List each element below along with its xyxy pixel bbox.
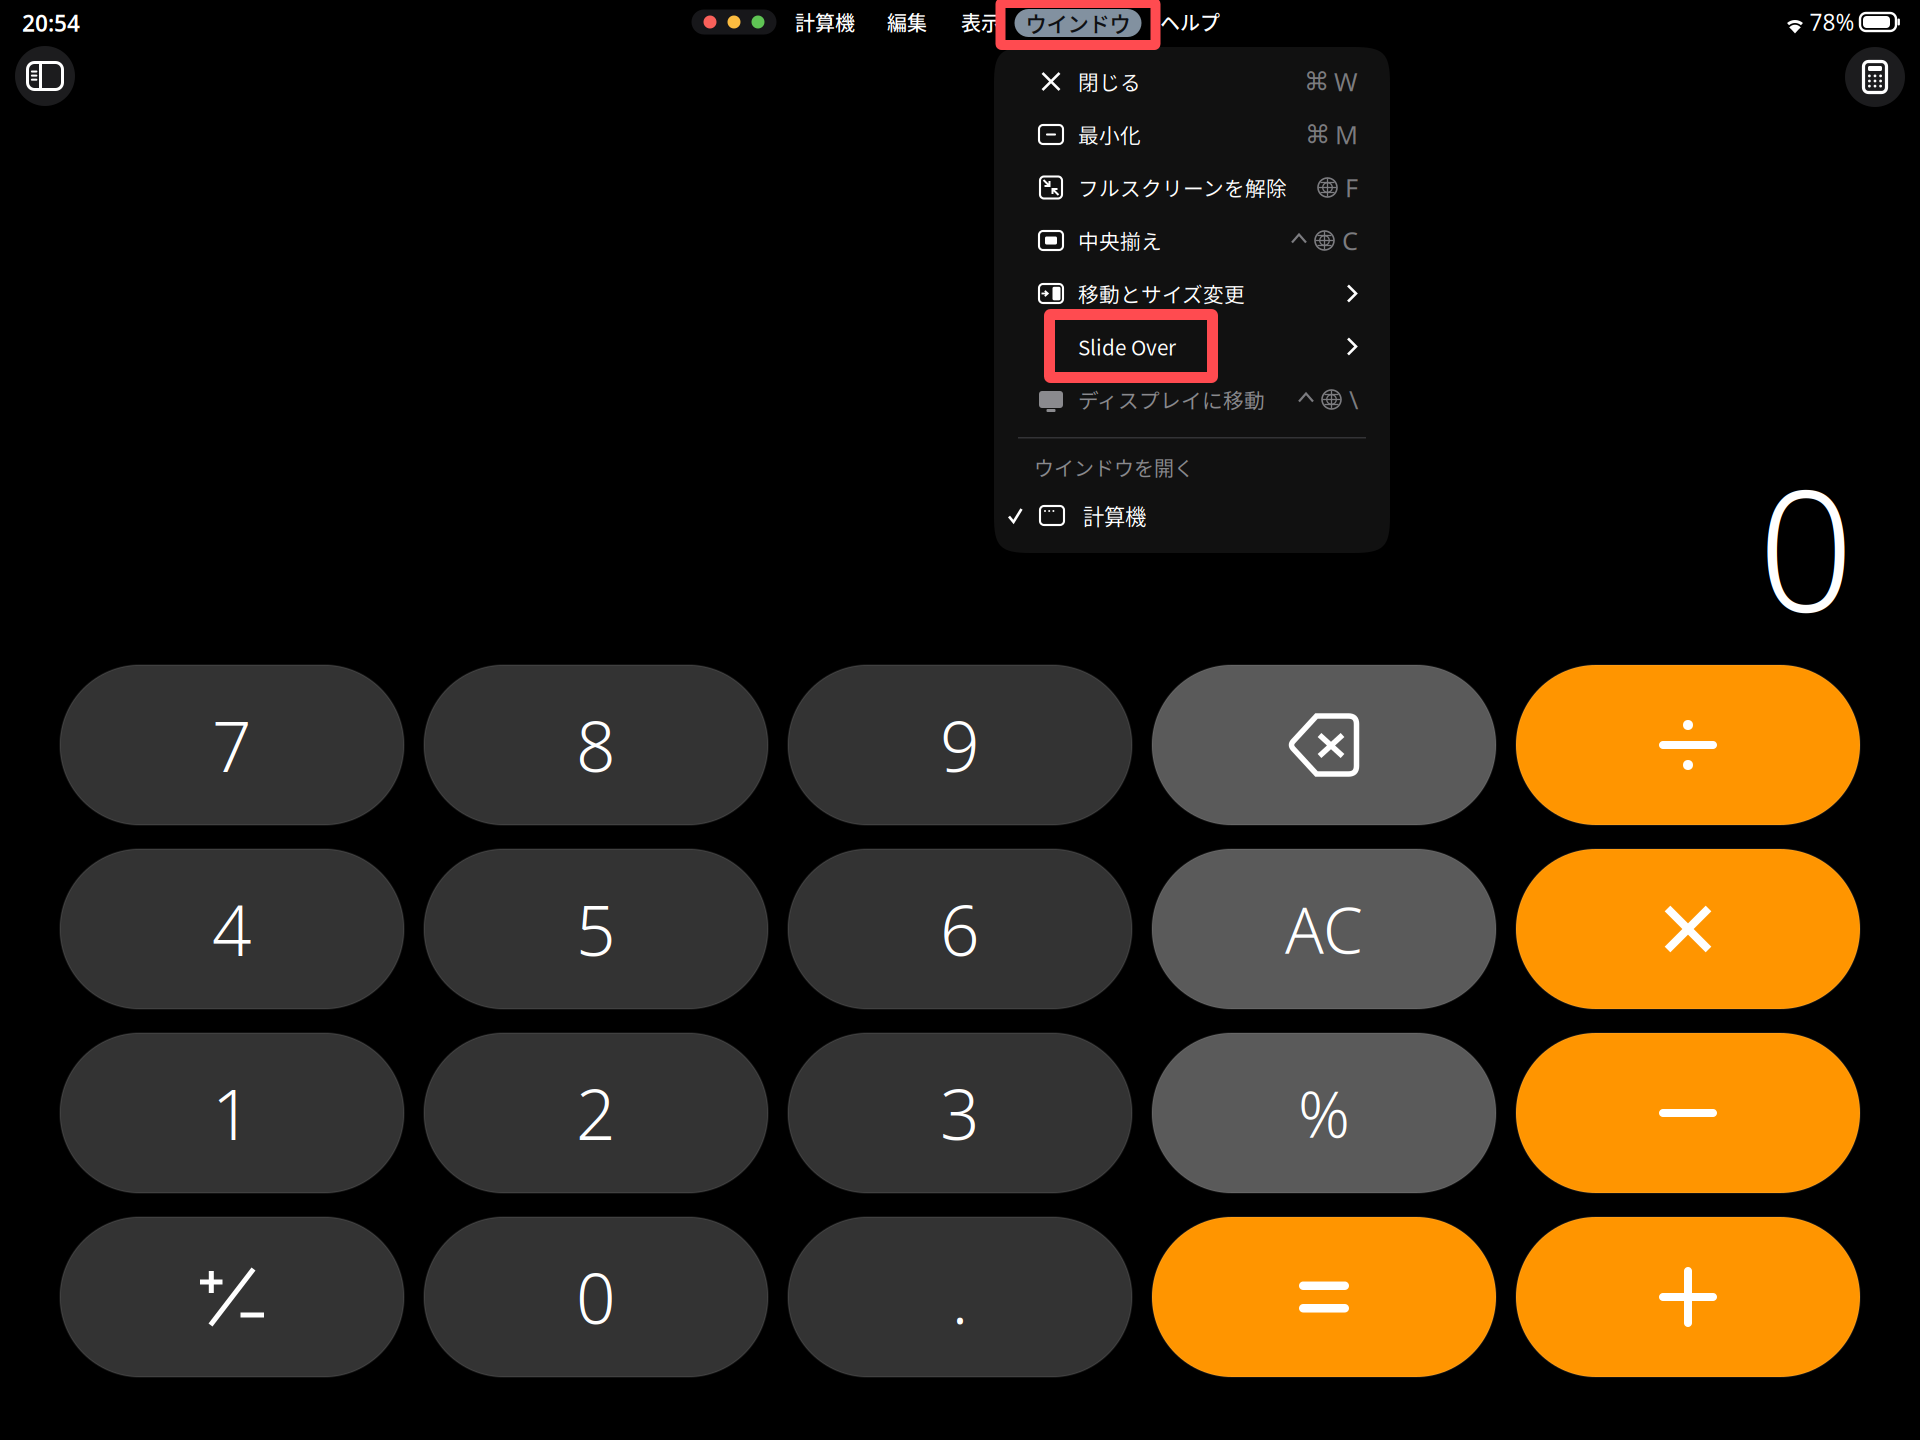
staticText: ⌘ xyxy=(1304,67,1329,96)
button[interactable]: 3 xyxy=(788,1033,1132,1193)
staticText: フルスクリーンを解除 xyxy=(1078,172,1287,202)
staticText: 6 xyxy=(940,883,980,975)
button[interactable]: 計算機 xyxy=(994,493,1390,537)
staticText: M xyxy=(1335,118,1358,151)
button[interactable]: 8 xyxy=(424,665,768,825)
staticText: 0 xyxy=(576,1251,616,1343)
button[interactable]: 5 xyxy=(424,849,768,1009)
button[interactable]: 0 xyxy=(424,1217,768,1377)
staticText: W xyxy=(1334,65,1358,98)
staticText: 移動とサイズ変更 xyxy=(1078,278,1245,308)
staticText: 7 xyxy=(212,699,252,791)
staticText: 編集 xyxy=(887,7,927,36)
button[interactable]: Toggle Sidebar xyxy=(15,46,75,106)
button[interactable]: % xyxy=(1152,1033,1496,1193)
button[interactable]: 4 xyxy=(60,849,404,1009)
button[interactable]: 9 xyxy=(788,665,1132,825)
button[interactable]: Equals xyxy=(1152,1217,1496,1377)
button[interactable]: 計算機 xyxy=(786,2,864,41)
staticText: ウインドウ xyxy=(1025,8,1130,38)
button[interactable]: 2 xyxy=(424,1033,768,1193)
staticText: ⌘ xyxy=(1305,120,1330,149)
staticText: 5 xyxy=(576,883,616,975)
staticText: 4 xyxy=(212,883,252,975)
staticText: 表示 xyxy=(961,7,1001,36)
button[interactable]: Divide xyxy=(1516,665,1860,825)
staticText: ヘルプ xyxy=(1160,7,1220,36)
staticText: \ xyxy=(1349,383,1358,416)
staticText: ディスプレイに移動 xyxy=(1078,384,1265,414)
button[interactable]: 6 xyxy=(788,849,1132,1009)
staticText: 閉じる xyxy=(1078,66,1141,96)
button[interactable]: Multiply xyxy=(1516,849,1860,1009)
button[interactable]: ディスプレイに移動 xyxy=(994,373,1390,426)
button[interactable]: Delete xyxy=(1152,665,1496,825)
staticText: F xyxy=(1345,171,1358,204)
staticText: ウインドウを開く xyxy=(1034,453,1194,482)
button[interactable]: フルスクリーンを解除 xyxy=(994,161,1390,214)
staticText: 計算機 xyxy=(1083,500,1146,531)
staticText: 20:54 xyxy=(22,8,80,38)
staticText: C xyxy=(1342,224,1358,257)
staticText: 3 xyxy=(940,1067,980,1159)
button[interactable]: 移動とサイズ変更 xyxy=(994,267,1390,320)
button[interactable]: Slide Over xyxy=(994,320,1390,373)
button[interactable]: Plus Minus xyxy=(60,1217,404,1377)
button[interactable]: Plus xyxy=(1516,1217,1860,1377)
staticText: AC xyxy=(1285,886,1363,971)
staticText: 9 xyxy=(940,699,980,791)
button[interactable]: 中央揃え xyxy=(994,214,1390,267)
button[interactable]: 7 xyxy=(60,665,404,825)
button[interactable]: AC xyxy=(1152,849,1496,1009)
staticText: 計算機 xyxy=(795,7,855,36)
staticText: 8 xyxy=(576,699,616,791)
button[interactable]: 編集 xyxy=(878,2,936,41)
staticText: % xyxy=(1298,1070,1350,1155)
button[interactable]: ウインドウ xyxy=(1014,9,1141,37)
staticText: 0 xyxy=(1758,434,1854,658)
staticText: 2 xyxy=(576,1067,616,1159)
staticText: 最小化 xyxy=(1078,119,1141,149)
button[interactable]: 表示 xyxy=(952,2,1010,41)
staticText: 中央揃え xyxy=(1078,225,1162,255)
button[interactable]: . xyxy=(788,1217,1132,1377)
staticText: 78% xyxy=(1809,7,1854,37)
staticText: . xyxy=(951,1251,968,1343)
button[interactable]: Calculator xyxy=(1845,47,1905,107)
staticText: Slide Over xyxy=(1078,331,1176,361)
button[interactable]: 1 xyxy=(60,1033,404,1193)
button[interactable]: ヘルプ xyxy=(1151,2,1229,41)
button[interactable]: Minus xyxy=(1516,1033,1860,1193)
staticText: 1 xyxy=(212,1067,252,1159)
button[interactable]: 最小化 xyxy=(994,108,1390,161)
button[interactable]: 閉じる xyxy=(994,55,1390,108)
